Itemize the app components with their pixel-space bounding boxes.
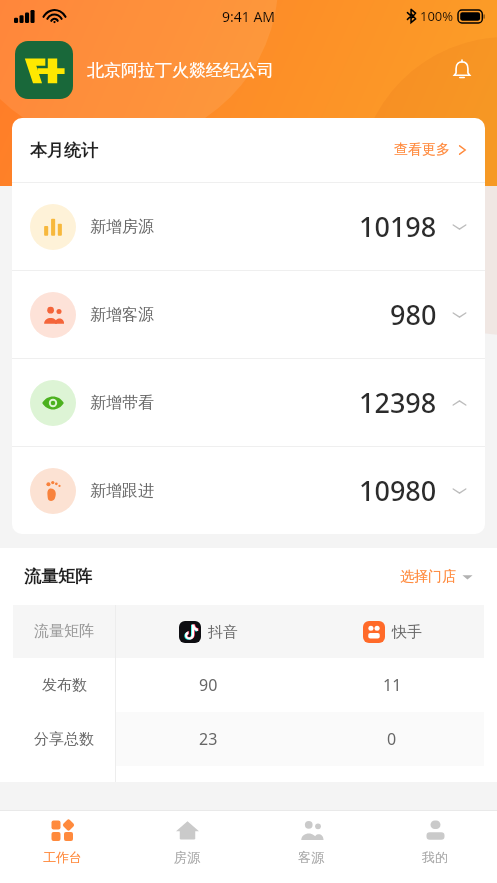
staticText: 抖音 — [208, 623, 238, 642]
button[interactable]: 新增带看 — [12, 359, 485, 446]
staticText: 我的 — [422, 849, 448, 865]
staticText: 10980 — [359, 472, 437, 509]
button[interactable]: 分享总数 — [13, 712, 484, 766]
button[interactable]: 查看更多 — [394, 135, 467, 165]
button[interactable]: 工作台 — [0, 811, 125, 883]
button[interactable]: 客源 — [249, 811, 373, 883]
staticText: 980 — [390, 296, 437, 333]
button[interactable]: 选择门店 — [400, 562, 473, 592]
button[interactable]: Company logo — [15, 41, 73, 99]
staticText: 流量矩阵 — [24, 566, 400, 587]
button[interactable]: Notifications — [442, 50, 482, 90]
button[interactable]: 我的 — [373, 811, 497, 883]
staticText: 90 — [199, 674, 218, 696]
staticText: 北京阿拉丁火燚经纪公司 — [87, 60, 442, 81]
staticText: 0 — [387, 728, 397, 750]
staticText: 10198 — [359, 208, 437, 245]
staticText: 客源 — [298, 849, 324, 865]
staticText: 100% — [420, 7, 454, 25]
button[interactable]: 房源 — [125, 811, 249, 883]
staticText: 发布数 — [42, 676, 87, 695]
staticText: 选择门店 — [400, 568, 456, 586]
staticText: 流量矩阵 — [34, 622, 94, 641]
staticText: 分享总数 — [34, 730, 94, 749]
staticText: 23 — [199, 728, 218, 750]
staticText: 9:41 AM — [222, 7, 276, 26]
staticText: 11 — [383, 674, 402, 696]
staticText: 12398 — [359, 384, 437, 421]
staticText: 房源 — [174, 849, 200, 865]
staticText: 本月统计 — [30, 140, 394, 161]
button[interactable]: 新增房源 — [12, 183, 485, 270]
staticText: 快手 — [392, 623, 422, 642]
staticText: 新增房源 — [90, 217, 359, 237]
button[interactable]: 新增客源 — [12, 271, 485, 358]
staticText: 工作台 — [43, 849, 82, 865]
button[interactable]: 新增跟进 — [12, 447, 485, 534]
staticText: 新增跟进 — [90, 481, 359, 501]
staticText: 查看更多 — [394, 141, 450, 159]
button[interactable]: 发布数 — [13, 658, 484, 712]
staticText: 新增带看 — [90, 393, 359, 413]
staticText: 新增客源 — [90, 305, 390, 325]
